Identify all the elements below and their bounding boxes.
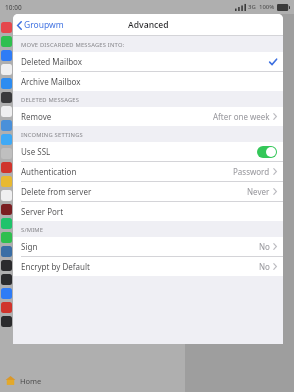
staticText: No (259, 241, 270, 252)
staticText: DELETED MESSAGES (21, 96, 80, 104)
button[interactable]: Authentication (13, 162, 283, 181)
button[interactable]: Groupwm (13, 16, 68, 34)
button[interactable]: Encrypt by Default (13, 257, 283, 276)
button[interactable]: Home (0, 373, 48, 388)
staticText: 3G (248, 3, 256, 11)
staticText: No (259, 261, 270, 272)
staticText: Password (233, 166, 270, 177)
button[interactable]: Remove (13, 107, 283, 126)
staticText: 100% (259, 3, 275, 11)
staticText: Archive Mailbox (21, 76, 81, 87)
staticText: Deleted Mailbox (21, 56, 83, 67)
button[interactable]: Use SSL (13, 142, 283, 161)
staticText: Delete from server (21, 186, 92, 197)
staticText: Encrypt by Default (21, 261, 90, 272)
staticText: After one week (213, 111, 270, 122)
staticText: Sign (21, 241, 38, 252)
staticText: Home (20, 376, 42, 386)
button[interactable]: Deleted Mailbox (13, 52, 283, 71)
button[interactable]: Archive Mailbox (13, 72, 283, 91)
staticText: Never (247, 186, 270, 197)
staticText: INCOMING SETTINGS (21, 131, 83, 139)
staticText: Use SSL (21, 146, 51, 157)
button[interactable]: Delete from server (13, 182, 283, 201)
button[interactable]: Server Port (13, 202, 283, 221)
staticText: Groupwm (24, 19, 64, 31)
button[interactable]: Sign (13, 237, 283, 256)
staticText: Remove (21, 111, 52, 122)
staticText: 10:00 (5, 3, 22, 12)
staticText: MOVE DISCARDED MESSAGES INTO: (21, 41, 125, 49)
staticText: Advanced (128, 19, 169, 31)
staticText: Authentication (21, 166, 77, 177)
staticText: S/MIME (21, 226, 44, 234)
staticText: Server Port (21, 206, 64, 217)
button[interactable]: Use SSL toggle, on (257, 146, 277, 158)
